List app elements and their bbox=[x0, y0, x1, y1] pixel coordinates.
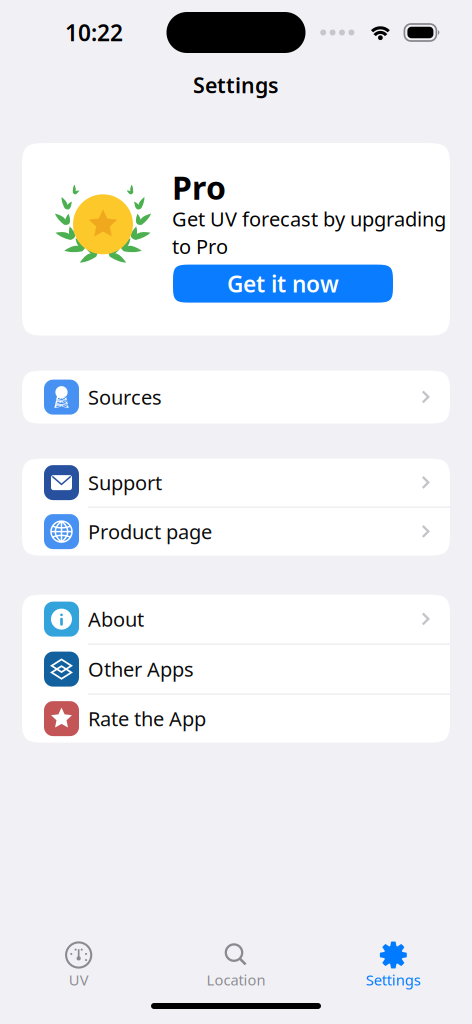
staticText: Other Apps bbox=[88, 656, 194, 682]
staticText: Settings bbox=[366, 970, 421, 989]
button[interactable]: Location bbox=[157, 929, 315, 991]
button[interactable]: Other Apps bbox=[22, 645, 450, 694]
staticText: to Pro bbox=[172, 233, 228, 260]
staticText: Get UV forecast by upgrading bbox=[172, 205, 446, 232]
button[interactable]: Get it now bbox=[173, 265, 393, 303]
staticText: UV bbox=[69, 970, 89, 989]
staticText: Support bbox=[88, 469, 162, 496]
button[interactable]: UV bbox=[0, 929, 157, 991]
button[interactable]: About bbox=[22, 595, 450, 644]
staticText: Rate the App bbox=[88, 705, 206, 732]
staticText: 10:22 bbox=[65, 17, 123, 47]
button[interactable]: Product page bbox=[22, 508, 450, 556]
staticText: Settings bbox=[193, 71, 279, 99]
staticText: Get it now bbox=[227, 269, 339, 299]
staticText: Pro bbox=[172, 166, 226, 208]
button[interactable]: Rate the App bbox=[22, 695, 450, 743]
button[interactable]: Support bbox=[22, 459, 450, 507]
staticText: About bbox=[88, 606, 144, 632]
staticText: Product page bbox=[88, 518, 212, 545]
staticText: Location bbox=[206, 970, 265, 989]
staticText: Sources bbox=[88, 384, 162, 410]
button[interactable]: Settings bbox=[315, 929, 472, 991]
button[interactable]: Sources bbox=[22, 371, 450, 424]
